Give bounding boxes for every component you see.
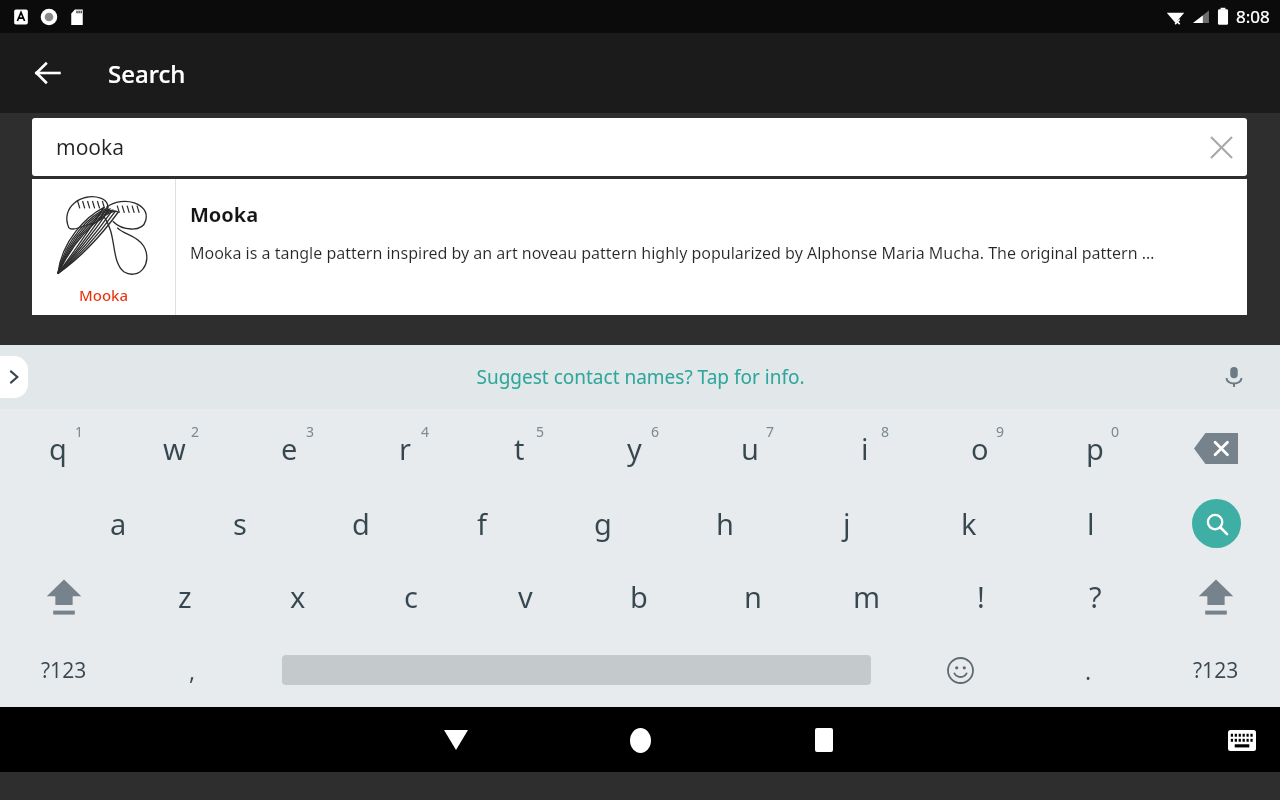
button[interactable]: w <box>116 409 232 487</box>
staticText: y <box>627 429 642 468</box>
staticText: j <box>843 504 851 543</box>
button[interactable]: ?123 <box>0 633 128 707</box>
staticText: d <box>352 504 370 543</box>
staticText: w <box>163 429 186 468</box>
staticText: 8 <box>881 422 890 441</box>
staticText: Search <box>108 57 186 90</box>
button[interactable]: s <box>179 487 300 560</box>
staticText: Mooka <box>79 285 129 305</box>
staticText: 9 <box>996 422 1005 441</box>
staticText: g <box>594 504 612 543</box>
button[interactable]: k <box>908 487 1030 560</box>
button[interactable]: f <box>421 487 542 560</box>
button[interactable]: Back <box>428 712 484 768</box>
button[interactable]: q <box>0 409 116 487</box>
staticText: . <box>1085 655 1092 686</box>
button[interactable]: Shift <box>0 560 128 633</box>
staticText: v <box>518 577 533 616</box>
button[interactable]: Clear <box>1195 121 1247 173</box>
staticText: r <box>399 429 411 468</box>
staticText: o <box>971 429 989 468</box>
button[interactable]: Voice input <box>1214 357 1254 397</box>
staticText: 5 <box>536 422 545 441</box>
button[interactable]: v <box>468 560 582 633</box>
staticText: 6 <box>651 422 660 441</box>
staticText: k <box>961 504 977 543</box>
button[interactable]: r <box>347 409 462 487</box>
button[interactable]: Emoji <box>896 633 1024 707</box>
staticText: mooka <box>56 133 1195 162</box>
button[interactable]: Search <box>1152 487 1280 560</box>
button[interactable]: y <box>577 409 692 487</box>
button[interactable]: Suggest contact names? Tap for info. <box>476 364 805 390</box>
staticText: 8:08 <box>1236 5 1270 28</box>
staticText: m <box>853 577 881 616</box>
staticText: 2 <box>191 422 200 441</box>
button[interactable]: ? <box>1038 560 1152 633</box>
button[interactable]: Backspace <box>1152 409 1280 487</box>
button[interactable]: , <box>128 633 256 707</box>
staticText: ?123 <box>1193 656 1239 685</box>
staticText: e <box>281 429 298 468</box>
button[interactable]: ?123 <box>1152 633 1280 707</box>
button[interactable]: Space <box>256 633 896 707</box>
button[interactable]: t <box>462 409 577 487</box>
staticText: Mooka is a tangle pattern inspired by an… <box>190 242 1155 264</box>
button[interactable]: g <box>542 487 664 560</box>
button[interactable]: u <box>692 409 807 487</box>
staticText: 3 <box>306 422 315 441</box>
staticText: 7 <box>766 422 775 441</box>
button[interactable]: z <box>128 560 241 633</box>
button[interactable]: x <box>241 560 354 633</box>
staticText: a <box>110 504 127 543</box>
button[interactable]: d <box>300 487 421 560</box>
button[interactable]: h <box>664 487 786 560</box>
staticText: 0 <box>1111 422 1120 441</box>
staticText: i <box>861 429 869 468</box>
button[interactable]: Back <box>20 45 76 101</box>
staticText: , <box>189 655 196 686</box>
button[interactable]: b <box>582 560 696 633</box>
staticText: x <box>290 577 306 616</box>
button[interactable]: m <box>810 560 924 633</box>
button[interactable]: e <box>232 409 347 487</box>
button[interactable]: Mooka <box>32 179 1247 315</box>
button[interactable]: Expand suggestions <box>0 356 28 398</box>
button[interactable]: Home <box>612 712 668 768</box>
staticText: ! <box>977 577 985 616</box>
button[interactable]: Recents <box>796 712 852 768</box>
button[interactable]: Shift <box>1152 560 1280 633</box>
button[interactable]: i <box>807 409 922 487</box>
button[interactable]: mooka <box>32 118 1247 176</box>
staticText: ?123 <box>41 656 87 685</box>
staticText: c <box>404 577 418 616</box>
button[interactable]: . <box>1024 633 1152 707</box>
button[interactable]: n <box>696 560 810 633</box>
staticText: 1 <box>75 422 84 441</box>
button[interactable]: p <box>1037 409 1152 487</box>
staticText: 4 <box>421 422 430 441</box>
staticText: s <box>233 504 247 543</box>
staticText: z <box>178 577 192 616</box>
staticText: Mooka <box>190 201 259 228</box>
button[interactable]: c <box>354 560 468 633</box>
button[interactable]: Switch keyboard <box>1218 716 1266 764</box>
staticText: l <box>1087 504 1095 543</box>
staticText: b <box>630 577 648 616</box>
staticText: t <box>514 429 525 468</box>
button[interactable]: ! <box>924 560 1038 633</box>
staticText: p <box>1086 429 1104 468</box>
staticText: q <box>49 429 67 468</box>
staticText: Suggest contact names? Tap for info. <box>476 364 805 390</box>
button[interactable]: a <box>58 487 179 560</box>
button[interactable]: o <box>922 409 1037 487</box>
staticText: f <box>477 504 487 543</box>
staticText: u <box>741 429 759 468</box>
staticText: ? <box>1089 577 1102 616</box>
button[interactable]: l <box>1030 487 1152 560</box>
staticText: n <box>744 577 762 616</box>
button[interactable]: j <box>786 487 908 560</box>
staticText: h <box>716 504 734 543</box>
